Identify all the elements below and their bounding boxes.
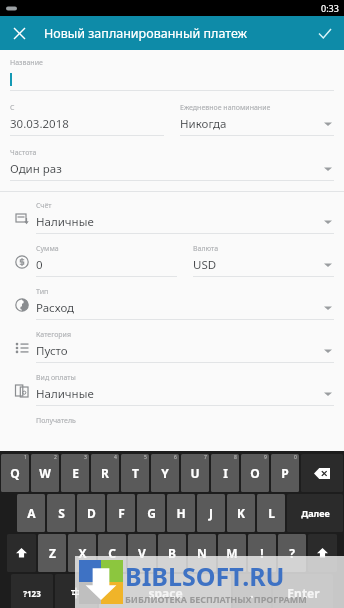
staticText: Наличные — [36, 214, 94, 230]
button[interactable]: С — [10, 103, 164, 136]
button[interactable]: Вид оплаты — [36, 373, 334, 406]
button[interactable]: I — [211, 454, 239, 492]
button[interactable]: Z — [38, 534, 66, 572]
staticText: Категория — [36, 330, 71, 340]
staticText: W — [39, 465, 51, 481]
staticText: Q — [10, 465, 20, 481]
button[interactable]: Backspace — [301, 454, 343, 492]
staticText: С — [10, 103, 15, 113]
staticText: O — [250, 465, 260, 481]
button[interactable]: Y — [151, 454, 179, 492]
staticText: 0:33 — [321, 2, 339, 14]
staticText: 9 — [264, 454, 267, 461]
button[interactable]: space — [99, 574, 231, 608]
button[interactable]: Close — [8, 22, 30, 44]
staticText: Название — [10, 58, 43, 68]
staticText: R — [101, 465, 109, 481]
button[interactable]: N — [188, 534, 216, 572]
staticText: Вид оплаты — [36, 373, 76, 383]
button[interactable]: Тип — [36, 287, 334, 320]
button[interactable]: Сумма — [36, 244, 177, 277]
button[interactable]: S — [47, 494, 75, 532]
button[interactable]: L — [257, 494, 285, 532]
button[interactable]: M — [218, 534, 246, 572]
staticText: 1 — [24, 454, 27, 461]
button[interactable]: Счёт — [36, 201, 334, 234]
button[interactable]: G — [137, 494, 165, 532]
button[interactable]: Shift — [308, 534, 337, 572]
staticText: Z — [49, 545, 56, 561]
button[interactable]: C — [98, 534, 126, 572]
button[interactable]: E — [61, 454, 89, 492]
button[interactable]: . — [233, 574, 271, 608]
staticText: X — [78, 545, 87, 561]
button[interactable]: T — [121, 454, 149, 492]
staticText: N — [197, 545, 207, 561]
button[interactable]: Частота — [10, 148, 334, 181]
button[interactable]: O — [241, 454, 269, 492]
button[interactable]: H — [167, 494, 195, 532]
staticText: Новый запланированный платеж — [44, 25, 248, 42]
button[interactable]: Language — [55, 574, 97, 608]
staticText: E — [72, 465, 79, 481]
button[interactable]: Q — [1, 454, 29, 492]
staticText: I — [223, 465, 228, 481]
staticText: H — [176, 505, 186, 521]
button[interactable]: W — [31, 454, 59, 492]
staticText: 0 — [36, 257, 43, 273]
staticText: Пусто — [36, 343, 68, 359]
staticText: 5 — [144, 454, 147, 461]
button[interactable]: ! — [248, 534, 276, 572]
staticText: Y — [161, 465, 169, 481]
button[interactable]: ? — [278, 534, 306, 572]
staticText: BIBLSOFT.RU — [125, 559, 285, 593]
button[interactable]: Далее — [287, 494, 343, 532]
button[interactable]: A — [17, 494, 45, 532]
button[interactable]: U — [181, 454, 209, 492]
staticText: C — [108, 545, 116, 561]
button[interactable]: Категория — [36, 330, 334, 363]
staticText: Счёт — [36, 201, 52, 211]
button[interactable]: B — [158, 534, 186, 572]
button[interactable]: Shift — [7, 534, 36, 572]
staticText: 7 — [204, 454, 207, 461]
button[interactable]: Save — [314, 22, 336, 44]
staticText: Валюта — [193, 244, 219, 254]
button[interactable]: ?123 — [11, 574, 53, 608]
button[interactable]: R — [91, 454, 119, 492]
staticText: Сумма — [36, 244, 59, 254]
staticText: Наличные — [36, 386, 94, 402]
staticText: space — [148, 585, 183, 601]
staticText: 0 — [294, 454, 297, 461]
staticText: B — [168, 545, 176, 561]
button[interactable]: X — [68, 534, 96, 572]
staticText: Далее — [301, 507, 330, 519]
staticText: K — [237, 505, 245, 521]
staticText: Никогда — [180, 116, 227, 132]
staticText: J — [209, 505, 213, 521]
staticText: ! — [260, 545, 264, 561]
button[interactable]: F — [107, 494, 135, 532]
button[interactable]: J — [197, 494, 225, 532]
staticText: 2 — [54, 454, 57, 461]
button[interactable]: K — [227, 494, 255, 532]
button[interactable]: Валюта — [193, 244, 334, 277]
staticText: V — [138, 545, 146, 561]
button[interactable]: Название — [10, 58, 334, 91]
staticText: 6 — [174, 454, 177, 461]
button[interactable]: D — [77, 494, 105, 532]
button[interactable]: Enter — [273, 574, 333, 608]
staticText: L — [268, 505, 275, 521]
staticText: 4 — [114, 454, 117, 461]
staticText: 30.03.2018 — [10, 116, 69, 132]
staticText: Ежедневное напоминание — [180, 103, 271, 113]
staticText: USD — [193, 257, 217, 273]
staticText: G — [147, 505, 156, 521]
button[interactable]: V — [128, 534, 156, 572]
staticText: P — [281, 465, 289, 481]
button[interactable]: Ежедневное напоминание — [180, 103, 334, 136]
staticText: Частота — [10, 148, 37, 158]
button[interactable]: P — [271, 454, 299, 492]
staticText: S — [58, 505, 65, 521]
staticText: D — [87, 505, 96, 521]
